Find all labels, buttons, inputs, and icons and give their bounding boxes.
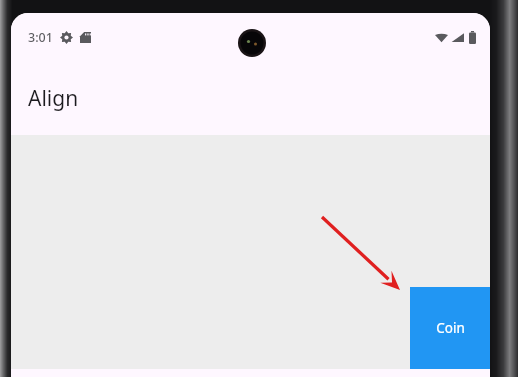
staticText: 3:01 [28,29,53,46]
staticText: Align [28,84,79,113]
button[interactable]: Coin [410,287,490,369]
staticText: Coin [436,319,465,337]
